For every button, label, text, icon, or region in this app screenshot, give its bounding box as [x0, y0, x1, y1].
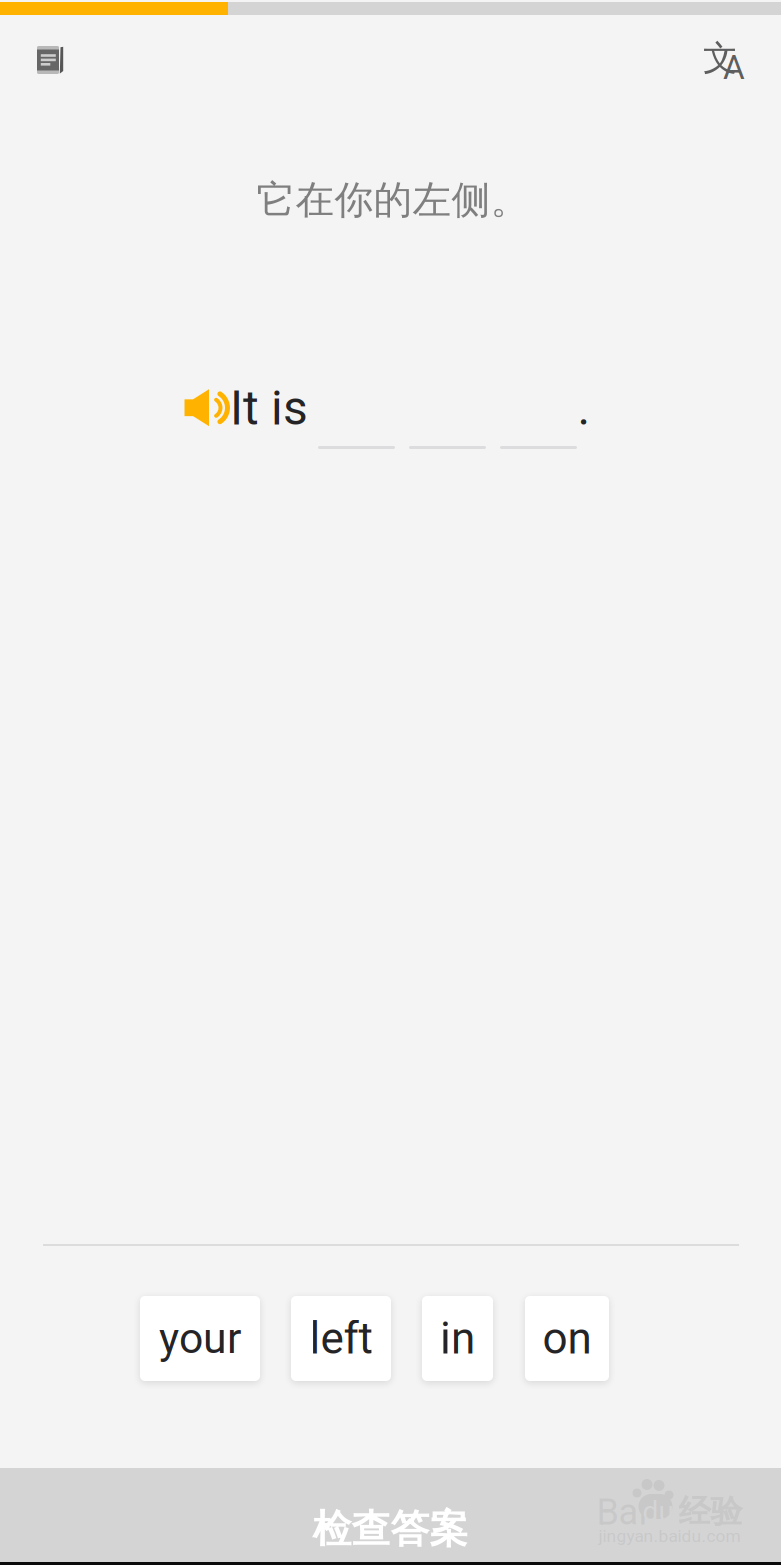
button[interactable]: Play audio: [177, 382, 235, 434]
staticText: jingyan.baidu.com: [598, 1526, 740, 1546]
staticText: Bai: [596, 1491, 647, 1533]
staticText: 检查答案: [312, 1505, 468, 1553]
staticText: your: [159, 1313, 241, 1363]
staticText: du: [642, 1495, 673, 1528]
button[interactable]: 检查答案: [0, 1468, 781, 1562]
staticText: left: [309, 1313, 372, 1364]
staticText: .: [577, 380, 590, 436]
button[interactable]: Lesson notes: [11, 22, 89, 98]
button[interactable]: your: [140, 1296, 260, 1381]
button[interactable]: Translate: [683, 21, 763, 97]
button[interactable]: on: [525, 1296, 609, 1381]
staticText: 文: [703, 37, 738, 80]
staticText: It is: [230, 380, 308, 436]
staticText: 经验: [678, 1492, 742, 1531]
staticText: A: [723, 48, 745, 87]
staticText: on: [542, 1313, 591, 1364]
button[interactable]: left: [291, 1296, 391, 1381]
staticText: 它在你的左侧。: [256, 176, 529, 224]
button[interactable]: in: [422, 1296, 493, 1381]
staticText: in: [440, 1313, 475, 1364]
